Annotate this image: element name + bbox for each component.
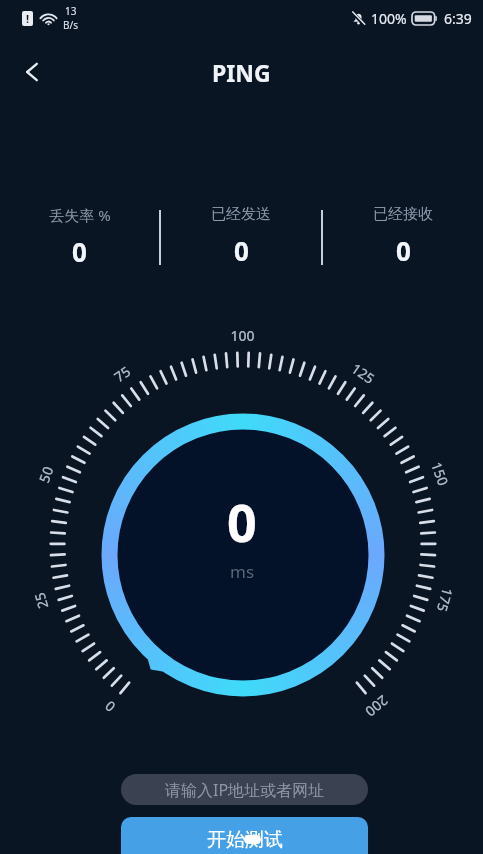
staticText: ms <box>230 560 255 583</box>
button[interactable]: Back <box>8 48 56 96</box>
staticText: 100% <box>371 9 407 28</box>
staticText: 开始测试 <box>207 828 283 852</box>
staticText: B/s <box>63 18 79 32</box>
staticText: ! <box>26 11 30 26</box>
staticText: 0 <box>72 234 87 269</box>
staticText: 丢失率 % <box>49 205 111 225</box>
staticText: 请输入IP地址或者网址 <box>165 779 325 801</box>
staticText: 0 <box>396 233 411 268</box>
button[interactable]: 已经接收 <box>323 200 483 268</box>
staticText: 0 <box>227 486 257 557</box>
staticText: 已经接收 <box>373 205 433 224</box>
staticText: 13 <box>65 4 77 18</box>
button[interactable]: 已经发送 <box>161 200 321 268</box>
button[interactable]: 丢失率 % <box>0 200 159 269</box>
staticText: PING <box>212 57 271 88</box>
staticText: 0 <box>234 233 249 268</box>
button[interactable]: 请输入IP地址或者网址 <box>121 774 368 805</box>
button[interactable]: 开始测试 <box>121 817 368 854</box>
staticText: 已经发送 <box>211 205 271 224</box>
staticText: 6:39 <box>444 9 472 28</box>
